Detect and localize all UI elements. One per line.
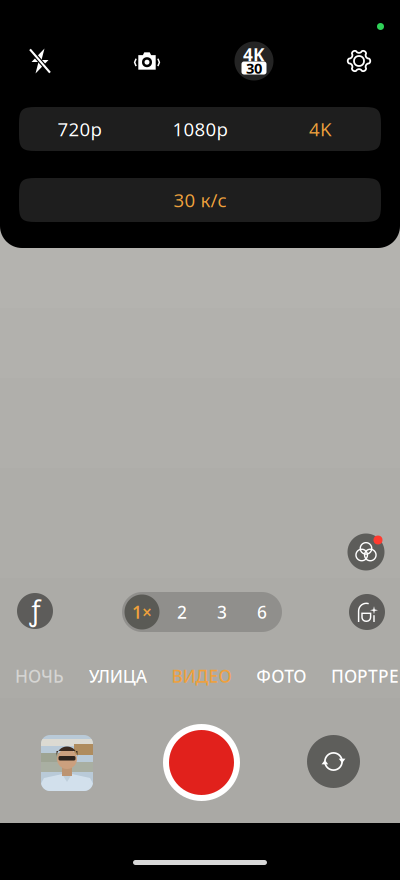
button[interactable]: УЛИЦА [82,662,154,690]
button[interactable]: 6 [242,592,282,632]
button[interactable]: Settings [331,36,387,86]
button[interactable]: 2 [162,592,202,632]
staticText: ƒ [29,592,40,628]
staticText: 1080p [172,117,227,141]
button[interactable]: 1× [122,592,162,632]
staticText: 6 [257,600,267,623]
button[interactable]: ПОРТРЕ [324,662,400,690]
staticText: НОЧЬ [15,664,64,687]
button[interactable]: НОЧЬ [8,662,71,690]
staticText: ФОТО [256,664,306,687]
staticText: 30 [246,58,262,78]
button[interactable]: 1080p [140,107,260,151]
button[interactable]: Video resolution 4K 30 [226,36,282,86]
button[interactable]: ВИДЕО [164,662,238,690]
button[interactable]: 720p [19,107,140,151]
button[interactable]: Record [163,724,240,801]
staticText: ВИДЕО [171,664,231,687]
staticText: УЛИЦА [89,664,147,687]
button[interactable]: 4K [260,107,381,151]
button[interactable]: ФОТО [249,662,313,690]
staticText: 4K [243,43,265,66]
staticText: 720p [57,117,101,141]
button[interactable]: Portrait retouch [345,590,389,634]
button[interactable]: 30 к/с [19,178,381,222]
staticText: ПОРТРЕ [331,664,399,687]
staticText: 30 к/с [173,188,226,212]
button[interactable]: Photo library [41,735,93,791]
button[interactable]: Aperture [13,589,57,633]
staticText: 3 [217,600,227,623]
button[interactable]: Action mode [119,36,175,86]
button[interactable]: Switch camera [307,735,360,788]
button[interactable]: Filters [343,529,389,575]
staticText: 4K [309,117,332,141]
staticText: 1× [132,600,152,623]
staticText: 2 [177,600,187,623]
button[interactable]: 3 [202,592,242,632]
button[interactable]: Flash off [12,36,68,86]
